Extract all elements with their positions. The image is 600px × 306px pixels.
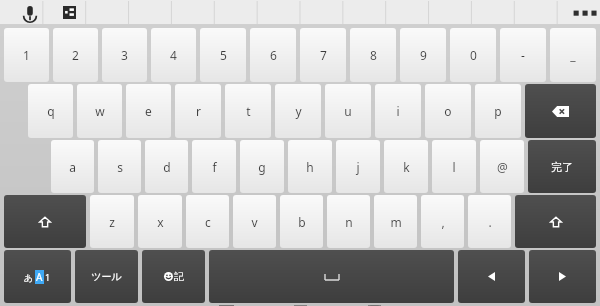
staticText: j bbox=[356, 159, 360, 175]
staticText: w bbox=[95, 103, 105, 119]
button[interactable]: @ bbox=[480, 140, 524, 193]
staticText: k bbox=[403, 159, 410, 175]
button[interactable]: v bbox=[233, 195, 276, 248]
button[interactable]: r bbox=[175, 84, 221, 138]
button[interactable]: n bbox=[327, 195, 370, 248]
staticText: 5 bbox=[220, 47, 227, 63]
button[interactable]: Shift bbox=[4, 195, 86, 248]
button[interactable]: Voice input bbox=[16, 0, 44, 25]
staticText: l bbox=[452, 159, 456, 175]
staticText: o bbox=[444, 103, 452, 119]
button[interactable]: Backspace bbox=[525, 84, 596, 138]
button[interactable]: p bbox=[475, 84, 521, 138]
button[interactable]: k bbox=[384, 140, 428, 193]
button[interactable]: o bbox=[425, 84, 471, 138]
button[interactable]: 9 bbox=[400, 28, 446, 82]
staticText: ツール bbox=[91, 270, 122, 283]
button[interactable]: Cursor right bbox=[529, 250, 596, 303]
staticText: 6 bbox=[270, 47, 277, 63]
staticText: y bbox=[295, 103, 302, 119]
button[interactable]: ツール bbox=[75, 250, 138, 303]
button[interactable]: c bbox=[186, 195, 229, 248]
staticText: d bbox=[163, 159, 171, 175]
button[interactable]: x bbox=[138, 195, 182, 248]
button[interactable]: , bbox=[421, 195, 464, 248]
staticText: z bbox=[109, 214, 115, 230]
button[interactable]: 5 bbox=[200, 28, 246, 82]
staticText: 2 bbox=[72, 47, 79, 63]
button[interactable]: f bbox=[192, 140, 236, 193]
button[interactable]: 4 bbox=[151, 28, 196, 82]
staticText: m bbox=[390, 214, 402, 230]
button[interactable]: 2 bbox=[53, 28, 98, 82]
button[interactable]: . bbox=[468, 195, 511, 248]
button[interactable]: 完了 bbox=[528, 140, 596, 193]
staticText: r bbox=[196, 103, 201, 119]
button[interactable]: y bbox=[275, 84, 321, 138]
button[interactable]: Space bbox=[209, 250, 454, 303]
staticText: x bbox=[157, 214, 164, 230]
staticText: n bbox=[345, 214, 353, 230]
button[interactable]: Change input mode bbox=[4, 250, 71, 303]
button[interactable]: 1 bbox=[4, 28, 49, 82]
button[interactable]: w bbox=[77, 84, 122, 138]
button[interactable]: 3 bbox=[102, 28, 147, 82]
button[interactable]: 0 bbox=[450, 28, 496, 82]
button[interactable]: z bbox=[90, 195, 134, 248]
button[interactable]: h bbox=[288, 140, 332, 193]
button[interactable]: 8 bbox=[350, 28, 396, 82]
staticText: q bbox=[47, 103, 55, 119]
staticText: h bbox=[306, 159, 314, 175]
button[interactable]: e bbox=[126, 84, 171, 138]
staticText: 1 bbox=[45, 271, 51, 283]
staticText: 記 bbox=[174, 270, 184, 283]
staticText: 9 bbox=[420, 47, 427, 63]
staticText: s bbox=[117, 159, 123, 175]
staticText: 0 bbox=[470, 47, 477, 63]
staticText: e bbox=[145, 103, 152, 119]
button[interactable]: Clipboard bbox=[56, 0, 82, 25]
button[interactable]: More options bbox=[560, 0, 600, 25]
button[interactable]: Cursor left bbox=[458, 250, 525, 303]
staticText: f bbox=[212, 159, 217, 175]
button[interactable]: l bbox=[432, 140, 476, 193]
button[interactable]: q bbox=[28, 84, 73, 138]
staticText: t bbox=[246, 103, 251, 119]
button[interactable]: j bbox=[336, 140, 380, 193]
button[interactable]: 6 bbox=[250, 28, 296, 82]
button[interactable]: Voice input bbox=[75, 18, 185, 72]
staticText: A bbox=[36, 270, 43, 284]
button[interactable]: m bbox=[374, 195, 417, 248]
staticText: _ bbox=[570, 47, 576, 63]
staticText: p bbox=[494, 103, 502, 119]
button[interactable]: Shift bbox=[515, 195, 596, 248]
button[interactable]: a bbox=[51, 140, 94, 193]
button[interactable]: d bbox=[145, 140, 188, 193]
staticText: v bbox=[251, 214, 258, 230]
button[interactable]: Symbols bbox=[142, 250, 205, 303]
staticText: @ bbox=[497, 159, 508, 175]
button[interactable]: - bbox=[500, 28, 546, 82]
staticText: c bbox=[205, 214, 211, 230]
staticText: , bbox=[441, 214, 445, 230]
button[interactable]: _ bbox=[550, 28, 596, 82]
button[interactable]: 7 bbox=[300, 28, 346, 82]
button[interactable]: g bbox=[240, 140, 284, 193]
staticText: 7 bbox=[320, 47, 327, 63]
button[interactable]: u bbox=[325, 84, 371, 138]
button[interactable]: i bbox=[375, 84, 421, 138]
staticText: a bbox=[69, 159, 76, 175]
staticText: あ bbox=[24, 272, 34, 283]
staticText: 1 bbox=[23, 47, 30, 63]
staticText: i bbox=[396, 103, 400, 119]
staticText: 8 bbox=[370, 47, 377, 63]
staticText: g bbox=[258, 159, 266, 175]
staticText: u bbox=[344, 103, 352, 119]
staticText: 3 bbox=[121, 47, 128, 63]
button[interactable]: t bbox=[225, 84, 271, 138]
button[interactable]: s bbox=[98, 140, 141, 193]
staticText: - bbox=[521, 47, 525, 63]
button[interactable]: b bbox=[280, 195, 323, 248]
staticText: . bbox=[488, 214, 492, 230]
staticText: 完了 bbox=[551, 160, 573, 174]
